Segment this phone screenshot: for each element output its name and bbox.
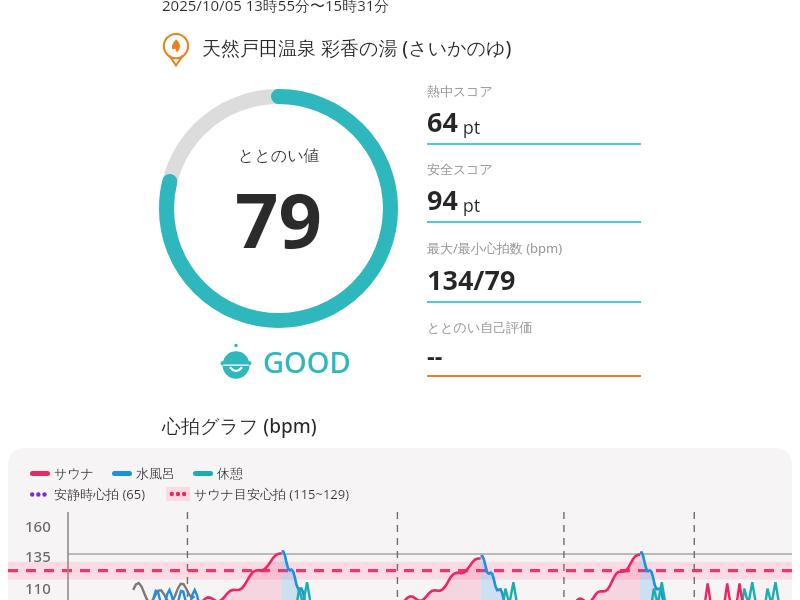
staticText: pt (458, 115, 481, 140)
staticText: 安静時心拍 (65) (54, 485, 146, 503)
staticText: 最大/最小心拍数 (bpm) (427, 239, 563, 257)
staticText: サウナ目安心拍 (115~129) (194, 485, 350, 503)
button[interactable]: ととのい自己評価 (427, 319, 641, 377)
staticText: 熱中スコア (427, 83, 493, 99)
button[interactable]: Good condition (215, 340, 351, 382)
staticText: 110 (25, 578, 51, 598)
staticText: GOOD (263, 342, 351, 381)
staticText: ととのい自己評価 (427, 319, 533, 335)
staticText: 2025/10/05 13時55分〜15時31分 (162, 0, 390, 15)
staticText: ととのい値 (238, 146, 320, 166)
staticText: 64 (427, 103, 458, 140)
staticText: 心拍グラフ (bpm) (162, 413, 317, 439)
staticText: 134/79 (427, 261, 516, 298)
staticText: 安全スコア (427, 161, 493, 177)
button[interactable]: 最大/最小心拍数 (bpm) (427, 239, 641, 303)
staticText: 79 (235, 167, 322, 271)
other: Good condition (215, 340, 257, 382)
staticText: 天然戸田温泉 彩香の湯 (さいかのゆ) (202, 35, 512, 61)
button[interactable]: 熱中スコア (427, 83, 641, 145)
staticText: 160 (25, 516, 51, 536)
other: Sauna venue (157, 29, 195, 67)
staticText: 水風呂 (136, 465, 175, 481)
staticText: 135 (25, 546, 51, 566)
button[interactable]: 安全スコア (427, 161, 641, 223)
staticText: 休憩 (217, 465, 243, 481)
staticText: pt (458, 193, 481, 218)
staticText: -- (427, 339, 443, 372)
staticText: サウナ (54, 465, 94, 481)
button[interactable]: Sauna venue (157, 29, 512, 67)
staticText: 94 (427, 181, 458, 218)
